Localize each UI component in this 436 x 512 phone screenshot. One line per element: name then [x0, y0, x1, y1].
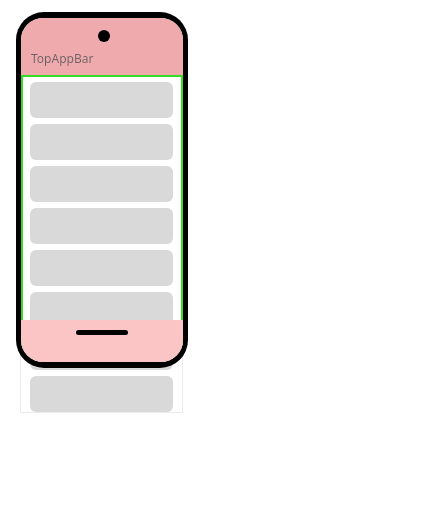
- button[interactable]: TopAppBar: [21, 18, 183, 75]
- button[interactable]: [30, 334, 173, 362]
- button[interactable]: [30, 334, 173, 370]
- button[interactable]: Home gesture handle: [76, 330, 128, 335]
- button[interactable]: [30, 292, 173, 328]
- button[interactable]: [30, 292, 173, 328]
- staticText: TopAppBar: [31, 50, 94, 66]
- other: Front camera: [98, 30, 110, 42]
